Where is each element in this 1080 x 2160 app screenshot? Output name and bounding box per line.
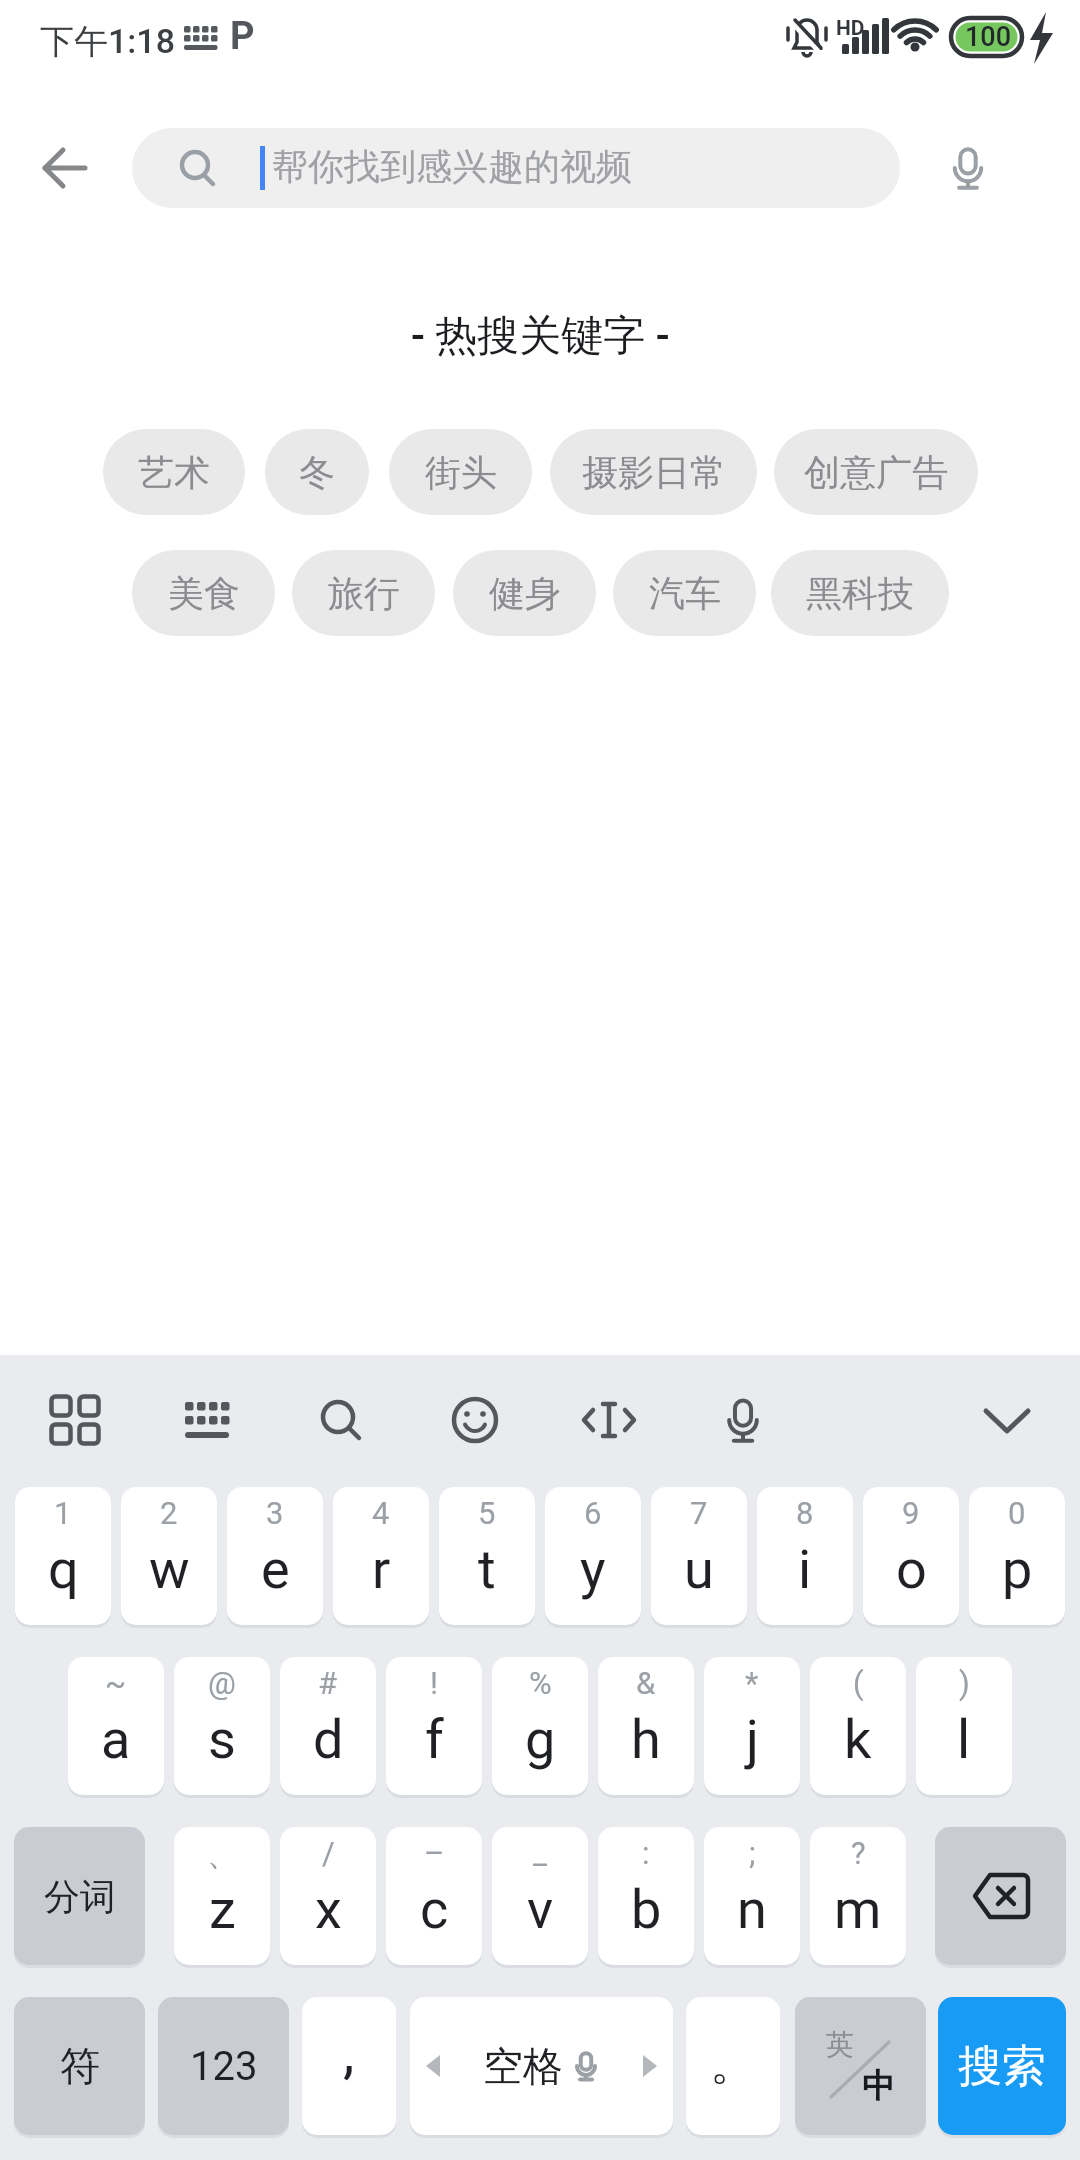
button[interactable]: : [598,1827,694,1965]
staticText: 街头 [425,450,497,495]
button[interactable]: @ [174,1657,270,1795]
button[interactable]: ! [386,1657,482,1795]
button[interactable]: 9 [863,1487,959,1625]
button[interactable]: 空格 [410,1997,673,2135]
button[interactable]: & [598,1657,694,1795]
staticText: 下午1:18 [40,20,175,63]
button[interactable]: 、 [174,1827,270,1965]
button[interactable]: * [704,1657,800,1795]
button[interactable]: 5 [439,1487,535,1625]
button[interactable]: 1 [15,1487,111,1625]
staticText: 创意广告 [804,450,948,495]
staticText: 黑科技 [806,571,914,616]
button[interactable] [167,1380,247,1460]
staticText: 汽车 [649,571,721,616]
staticText: 空格 [483,2041,563,2091]
staticText: ~ [105,1665,127,1701]
staticText: 分词 [44,1874,116,1919]
button[interactable]: _ [492,1827,588,1965]
staticText: # [318,1665,338,1701]
button[interactable]: – [386,1827,482,1965]
staticText: 符 [60,2041,100,2091]
button[interactable]: % [492,1657,588,1795]
staticText: HD [836,16,865,41]
button[interactable]: 英 [795,1997,926,2135]
staticText: ! [430,1665,438,1701]
button[interactable] [569,1380,649,1460]
staticText: 4 [372,1495,390,1531]
button[interactable] [35,1380,115,1460]
staticText: x [315,1878,342,1941]
button[interactable]: 。 [686,1997,780,2135]
button[interactable]: 7 [651,1487,747,1625]
button[interactable] [25,128,105,208]
staticText: 冬 [299,450,335,495]
staticText: 旅行 [328,571,400,616]
staticText: 英 [826,2027,854,2062]
staticText: k [844,1708,872,1771]
button[interactable] [967,1380,1047,1460]
button[interactable]: 街头 [389,429,532,515]
staticText: ) [959,1665,970,1701]
staticText: ; [749,1835,756,1871]
staticText: z [209,1878,236,1941]
button[interactable] [301,1380,381,1460]
staticText: 艺术 [138,450,210,495]
staticText: w [149,1538,190,1601]
button[interactable]: 符 [14,1997,145,2135]
button[interactable]: 创意广告 [774,429,978,515]
button[interactable]: 旅行 [292,550,435,636]
staticText: 3 [266,1495,284,1531]
staticText: : [642,1835,650,1871]
staticText: d [313,1708,344,1771]
button[interactable]: 健身 [453,550,596,636]
button[interactable]: 美食 [132,550,275,636]
staticText: f [425,1708,444,1771]
staticText: 健身 [489,571,561,616]
staticText: 2 [160,1495,178,1531]
button[interactable]: 6 [545,1487,641,1625]
staticText: 6 [584,1495,602,1531]
button[interactable]: 摄影日常 [550,429,757,515]
staticText: – [424,1835,445,1871]
button[interactable]: 0 [969,1487,1065,1625]
button[interactable]: 冬 [265,429,369,515]
button[interactable]: / [280,1827,376,1965]
button[interactable] [703,1380,783,1460]
staticText: m [834,1878,882,1941]
button[interactable]: ) [916,1657,1012,1795]
staticText: l [957,1708,971,1771]
staticText: ? [851,1835,866,1871]
button[interactable]: 汽车 [613,550,756,636]
staticText: ( [853,1665,864,1701]
staticText: 帮你找到感兴趣的视频 [272,144,632,189]
staticText: @ [208,1665,236,1701]
staticText: p [1002,1538,1033,1601]
button[interactable]: # [280,1657,376,1795]
staticText: s [208,1708,236,1771]
staticText: j [746,1708,759,1771]
button[interactable] [435,1380,515,1460]
button[interactable]: 艺术 [103,429,245,515]
staticText: i [798,1538,812,1601]
button[interactable]: ? [810,1827,906,1965]
button[interactable]: 2 [121,1487,217,1625]
button[interactable]: 4 [333,1487,429,1625]
staticText: n [737,1878,767,1941]
button[interactable]: , [302,1997,396,2135]
button[interactable]: 帮你找到感兴趣的视频 [132,128,900,208]
button[interactable]: 黑科技 [771,550,949,636]
button[interactable]: 123 [158,1997,289,2135]
button[interactable]: 8 [757,1487,853,1625]
button[interactable]: 搜索 [938,1997,1066,2135]
button[interactable] [928,128,1008,208]
button[interactable] [935,1827,1066,1965]
staticText: 7 [690,1495,708,1531]
button[interactable]: ; [704,1827,800,1965]
button[interactable]: ( [810,1657,906,1795]
button[interactable]: 3 [227,1487,323,1625]
staticText: 100 [965,21,1012,53]
button[interactable]: ~ [68,1657,164,1795]
button[interactable]: 分词 [14,1827,145,1965]
staticText: g [525,1708,556,1771]
